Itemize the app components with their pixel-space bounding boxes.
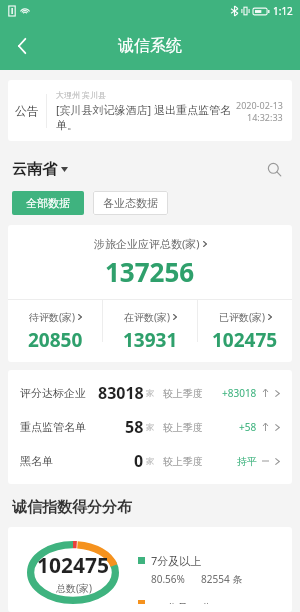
staticText: +58 <box>239 420 257 434</box>
staticText: 137256 <box>105 254 195 289</box>
staticText: 82554 条 <box>201 572 243 586</box>
button[interactable]: Search <box>260 155 288 183</box>
staticText: 各业态数据 <box>103 196 158 210</box>
button[interactable]: Back <box>0 24 44 68</box>
staticText: ≥6分且<7分 <box>151 600 213 604</box>
staticText: 家 <box>146 422 154 432</box>
staticText: 14:32:33 <box>247 111 283 123</box>
staticText: 较上季度 <box>163 455 203 468</box>
staticText: 在评数(家) <box>124 310 170 324</box>
button[interactable]: 待评数(家) <box>8 300 102 362</box>
staticText: 较上季度 <box>163 387 203 400</box>
staticText: 80.56% <box>151 572 185 586</box>
staticText: 大理州 宾川县 <box>56 89 107 100</box>
button[interactable]: 黑名单 <box>8 444 292 478</box>
staticText: 公告 <box>15 103 39 118</box>
staticText: 7分及以上 <box>151 553 202 568</box>
button[interactable]: 各业态数据 <box>93 191 168 215</box>
staticText: 总数(家) <box>56 581 92 595</box>
staticText: 全部数据 <box>26 196 70 210</box>
staticText: 诚信指数得分分布 <box>12 498 132 517</box>
staticText: 0 <box>134 450 144 472</box>
staticText: 13931 <box>123 327 178 353</box>
staticText: 持平 <box>237 455 257 468</box>
button[interactable]: 在评数(家) <box>103 300 197 362</box>
staticText: 102475 <box>37 551 110 580</box>
staticText: 102475 <box>212 327 278 353</box>
staticText: 家 <box>146 388 154 398</box>
button[interactable]: 全部数据 <box>12 191 84 215</box>
staticText: 待评数(家) <box>29 310 75 324</box>
staticText: 83018 <box>98 382 144 404</box>
staticText: 评分达标企业 <box>20 386 86 400</box>
staticText: 重点监管名单 <box>20 420 86 434</box>
staticText: 诚信系统 <box>118 36 182 56</box>
staticText: 较上季度 <box>163 421 203 434</box>
staticText: 2020-02-13 <box>236 99 283 111</box>
button[interactable]: 重点监管名单 <box>8 410 292 444</box>
staticText: 云南省 <box>12 160 57 179</box>
staticText: [宾川县刘记缘酒店] 退出重点监管名单。 <box>56 102 232 132</box>
staticText: 58 <box>125 416 144 438</box>
button[interactable]: 云南省 <box>12 160 68 179</box>
button[interactable]: 已评数(家) <box>198 300 292 362</box>
staticText: 涉旅企业应评总数(家) <box>94 236 200 251</box>
staticText: 黑名单 <box>20 454 53 468</box>
button[interactable]: 公告 <box>8 80 292 141</box>
button[interactable]: 涉旅企业应评总数(家) <box>8 225 292 299</box>
staticText: +83018 <box>222 386 257 400</box>
staticText: 20850 <box>28 327 83 353</box>
staticText: 家 <box>146 456 154 466</box>
button[interactable]: 评分达标企业 <box>8 376 292 410</box>
staticText: 1:12 <box>273 4 293 18</box>
staticText: 已评数(家) <box>219 310 265 324</box>
